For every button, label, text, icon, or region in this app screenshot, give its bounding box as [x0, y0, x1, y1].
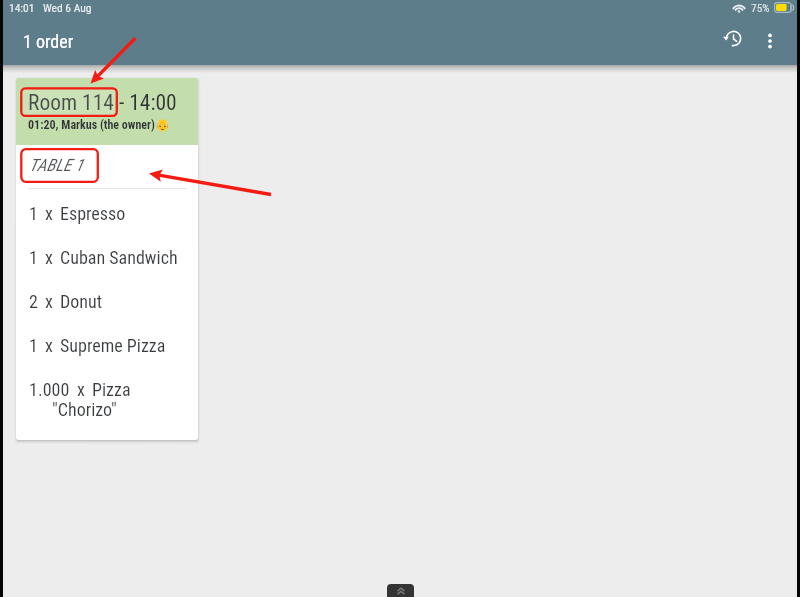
staticText: 75% [751, 1, 770, 14]
staticText: x [77, 379, 85, 400]
staticText: 2 [29, 291, 38, 312]
staticText: 1.000 [29, 379, 70, 400]
button[interactable]: More options [752, 23, 788, 59]
staticText: 1 [29, 247, 38, 268]
staticText: Room 114 - 14:00 [28, 90, 177, 115]
staticText: "Chorizo" [52, 399, 117, 420]
staticText: TABLE 1 [29, 155, 84, 175]
button[interactable]: 1.000 [16, 379, 198, 423]
staticText: Espresso [60, 203, 126, 224]
button[interactable]: Room 114 - 14:00 [16, 78, 198, 440]
button[interactable]: Show navigation bar [387, 584, 414, 597]
staticText: 1 order [23, 31, 74, 52]
button[interactable]: 2 [16, 291, 198, 335]
staticText: 14:01 [9, 1, 35, 14]
staticText: Pizza [92, 379, 131, 400]
button[interactable]: 1 [16, 335, 198, 379]
staticText: x [45, 203, 53, 224]
staticText: x [45, 335, 53, 356]
staticText: Wed 6 Aug [43, 1, 92, 14]
staticText: Cuban Sandwich [60, 247, 178, 268]
button[interactable]: 1 [16, 247, 198, 291]
staticText: x [45, 291, 53, 312]
staticText: Donut [60, 291, 103, 312]
staticText: Supreme Pizza [60, 335, 166, 356]
staticText: 1 [29, 203, 38, 224]
staticText: 1 [29, 335, 38, 356]
staticText: 01:20, Markus (the owner)👴 [28, 118, 170, 132]
staticText: x [45, 247, 53, 268]
button[interactable]: Order history [710, 16, 754, 60]
button[interactable]: 1 [16, 203, 198, 247]
